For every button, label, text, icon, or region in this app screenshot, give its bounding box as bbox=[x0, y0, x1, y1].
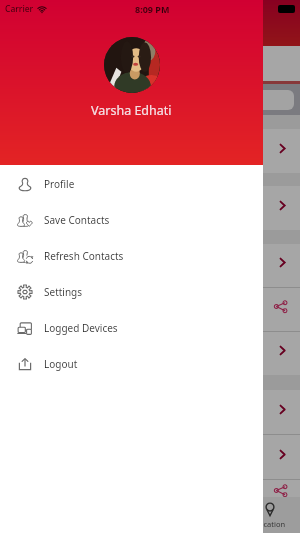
button[interactable] bbox=[0, 244, 300, 287]
staticText: Refresh Contacts bbox=[44, 249, 124, 263]
button[interactable]: Refresh Contacts bbox=[0, 238, 263, 274]
staticText: Profile bbox=[44, 177, 75, 191]
button[interactable] bbox=[0, 332, 300, 375]
staticText: Location bbox=[255, 519, 286, 529]
button[interactable] bbox=[0, 288, 300, 331]
button[interactable] bbox=[0, 480, 300, 506]
staticText: Settings bbox=[44, 285, 83, 299]
button[interactable] bbox=[0, 129, 300, 173]
staticText: Logout bbox=[44, 357, 78, 371]
button[interactable] bbox=[0, 186, 300, 230]
button[interactable] bbox=[0, 435, 300, 479]
button[interactable]: Logout bbox=[0, 346, 263, 382]
button[interactable] bbox=[0, 390, 300, 434]
staticText: Carrier bbox=[5, 3, 34, 15]
staticText: Logged Devices bbox=[44, 321, 118, 335]
button[interactable]: Profile bbox=[0, 166, 263, 202]
button[interactable]: Location bbox=[240, 497, 300, 533]
button[interactable]: Save Contacts bbox=[0, 202, 263, 238]
button[interactable]: Logged Devices bbox=[0, 310, 263, 346]
staticText: Save Contacts bbox=[44, 213, 110, 227]
button[interactable]: Settings bbox=[0, 274, 263, 310]
staticText: Varsha Edhati bbox=[91, 102, 172, 119]
staticText: 8:09 PM bbox=[135, 3, 170, 15]
